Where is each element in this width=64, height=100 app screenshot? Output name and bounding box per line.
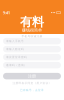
staticText: 邀请码（选填） — [6, 63, 27, 67]
staticText: 注册即送新人红包 — [16, 36, 48, 40]
staticText: 手机号快速注册 — [21, 35, 42, 38]
staticText: 请输入手机号 — [6, 39, 24, 43]
staticText: 赚钱很简单 — [22, 28, 42, 32]
staticText: 注册即表示同意《用户协议》 — [12, 82, 51, 85]
staticText: 请输入验证码 — [6, 47, 24, 51]
button[interactable]: 已有账号，去登录 — [20, 88, 44, 92]
button[interactable]: 请输入验证码 — [3, 46, 61, 52]
button[interactable]: 请设置登录密码 — [3, 54, 61, 60]
button[interactable]: 请输入手机号 — [3, 38, 61, 44]
staticText: 注册 — [28, 74, 36, 79]
button[interactable]: 邀请码（选填） — [3, 62, 61, 68]
staticText: 请设置登录密码 — [6, 55, 27, 59]
staticText: 已有账号，去登录 — [20, 88, 44, 92]
staticText: 9:41 — [3, 10, 10, 15]
staticText: 有料 — [20, 15, 44, 29]
button[interactable]: 注册 — [3, 73, 61, 79]
